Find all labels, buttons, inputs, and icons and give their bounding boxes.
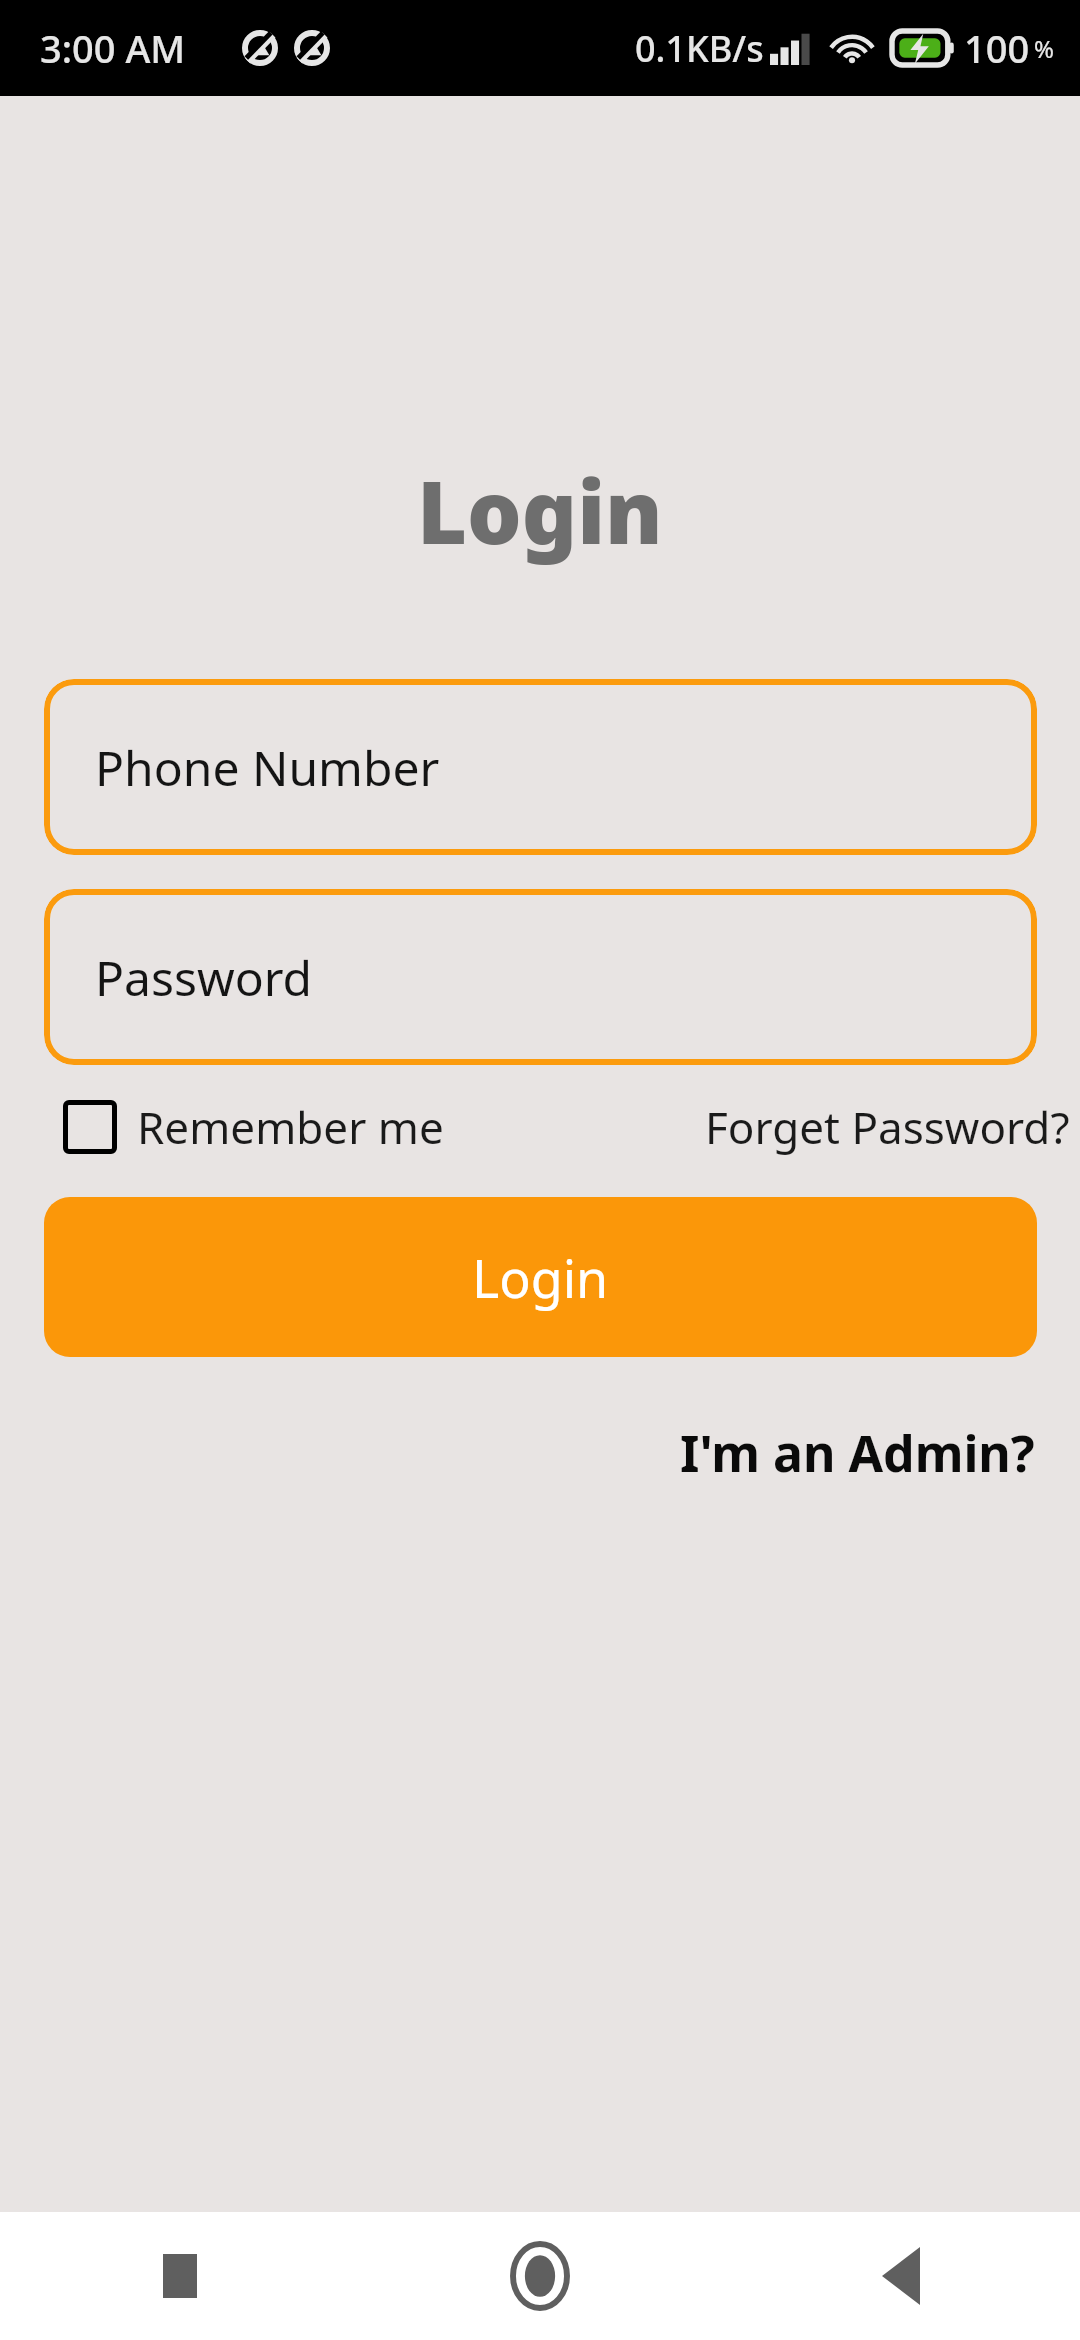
button[interactable]: Recents bbox=[0, 2212, 360, 2340]
staticText: Login bbox=[417, 452, 663, 569]
button[interactable]: I'm an Admin? bbox=[680, 1419, 1035, 1487]
staticText: 3:00 AM bbox=[40, 22, 186, 74]
button[interactable]: Phone Number bbox=[44, 679, 1037, 855]
staticText: Password bbox=[95, 945, 313, 1010]
staticText: Login bbox=[472, 1242, 609, 1313]
staticText: I'm an Admin? bbox=[680, 1419, 1035, 1487]
staticText: 100 bbox=[964, 22, 1030, 74]
staticText: Remember me bbox=[137, 1097, 444, 1157]
button[interactable]: Back bbox=[720, 2212, 1080, 2340]
button[interactable]: Remember me bbox=[63, 1097, 444, 1157]
button[interactable]: Home bbox=[360, 2212, 720, 2340]
staticText: Phone Number bbox=[95, 735, 440, 800]
staticText: % bbox=[1034, 32, 1054, 65]
button[interactable]: Login bbox=[44, 1197, 1037, 1357]
button[interactable]: Forget Password? bbox=[705, 1097, 1070, 1157]
staticText: 0.1KB/s bbox=[635, 24, 764, 73]
staticText: Forget Password? bbox=[705, 1097, 1070, 1157]
button[interactable]: Password bbox=[44, 889, 1037, 1065]
